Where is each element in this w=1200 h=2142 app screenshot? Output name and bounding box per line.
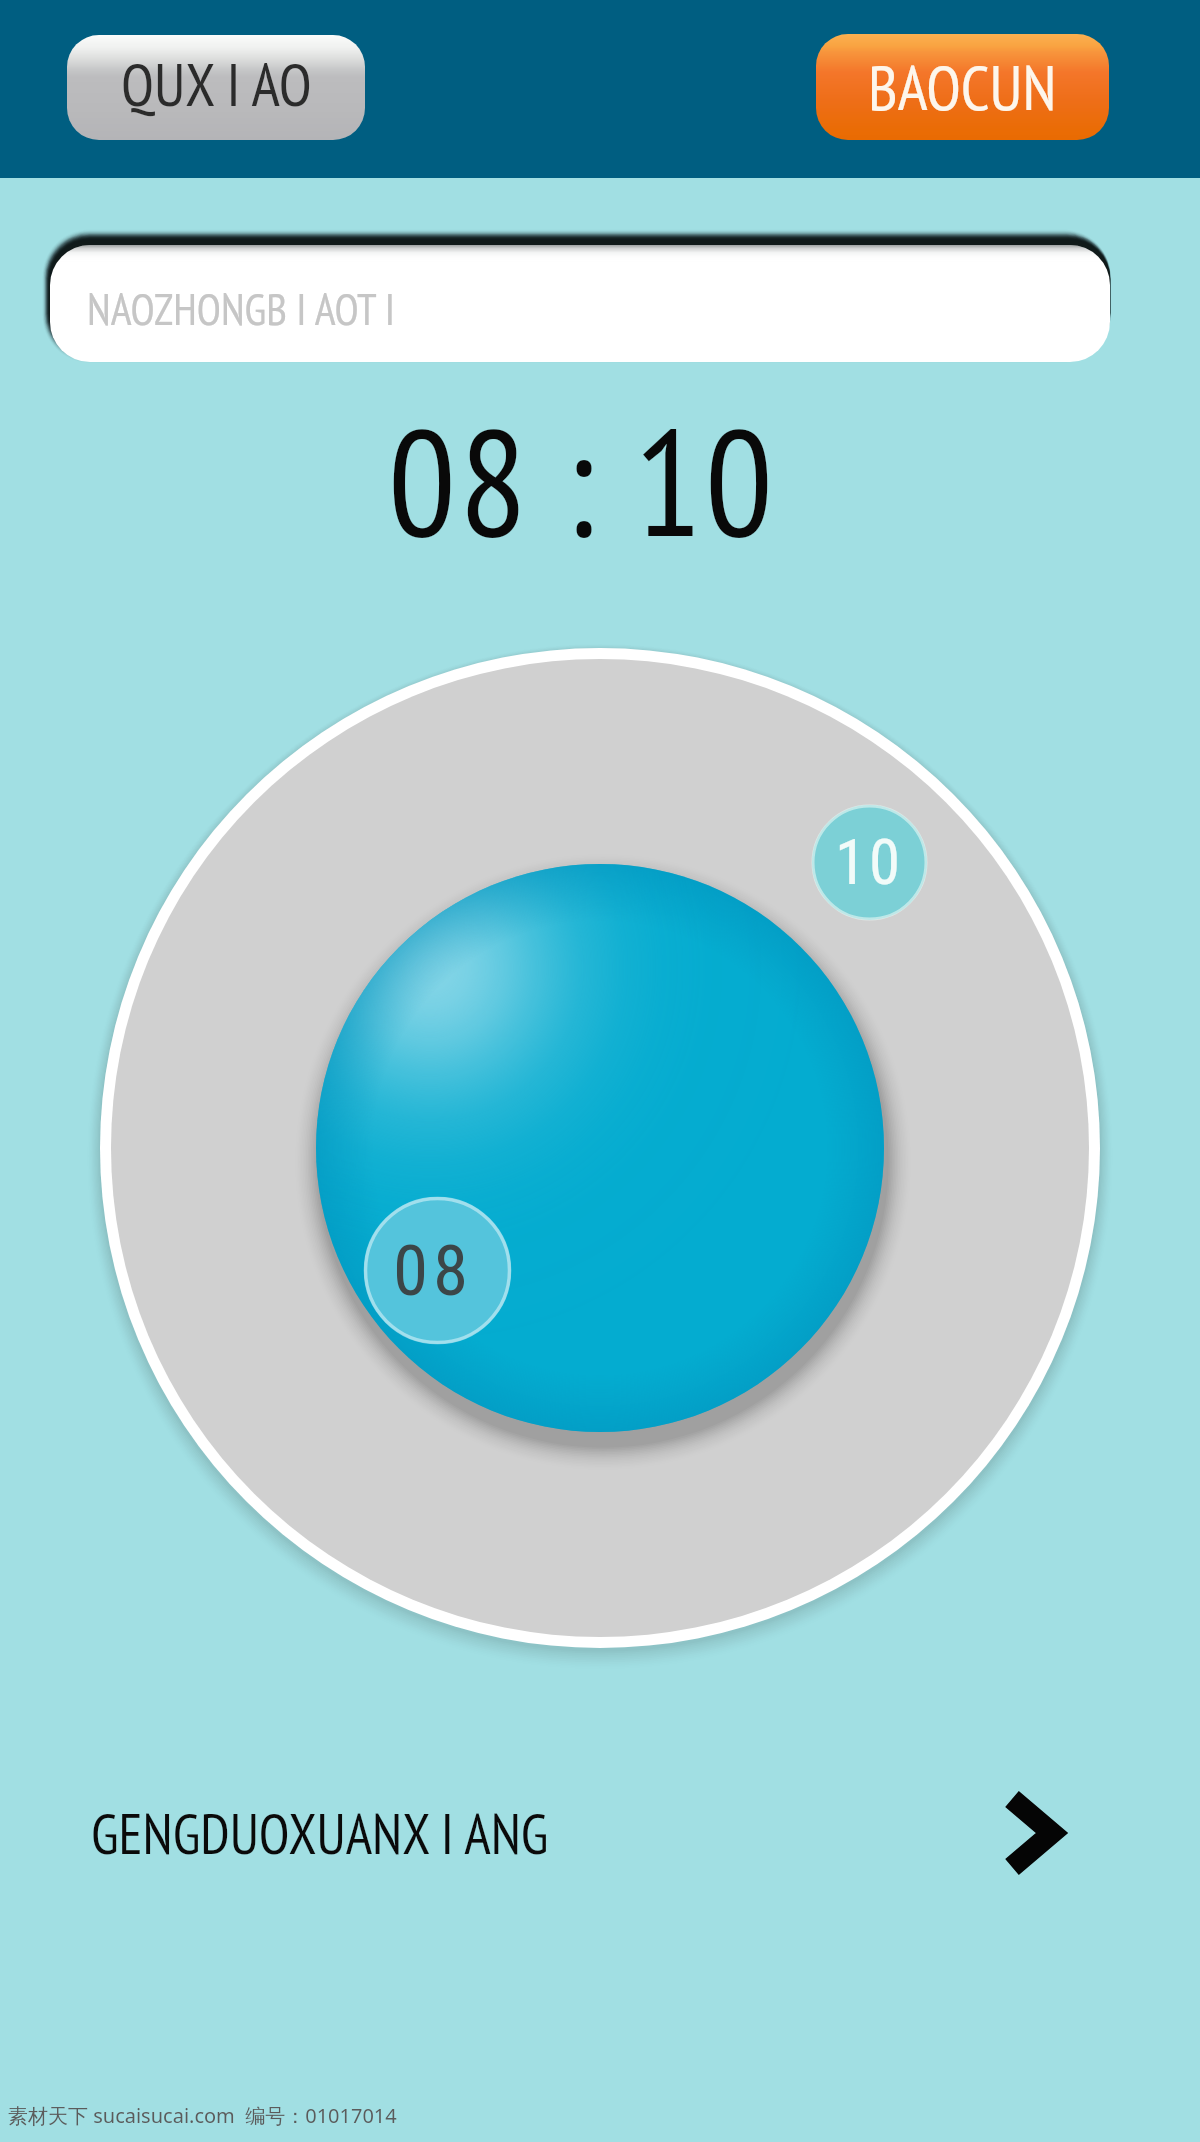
staticText: 素材天下 sucaisucai.com 编号：01017014 [8, 2102, 397, 2129]
staticText: 08 : 10 [388, 382, 776, 577]
button[interactable]: BAOCUN [816, 34, 1109, 140]
button[interactable]: 10 [812, 805, 927, 920]
staticText: QUX I AO [121, 45, 312, 123]
button[interactable]: 08 [364, 1197, 511, 1344]
staticText: BAOCUN [868, 46, 1057, 128]
button[interactable]: NAOZHONGB I AOT I [50, 245, 1110, 362]
button[interactable]: QUX I AO [67, 35, 365, 140]
staticText: NAOZHONGB I AOT I [87, 280, 395, 337]
staticText: 08 [393, 1229, 474, 1312]
staticText: 10 [835, 826, 904, 900]
other: More options [1000, 1768, 1200, 1898]
staticText: GENGDUOXUANX I ANG [91, 1797, 549, 1869]
button[interactable]: GENGDUOXUANX I ANG [0, 1768, 1200, 1898]
